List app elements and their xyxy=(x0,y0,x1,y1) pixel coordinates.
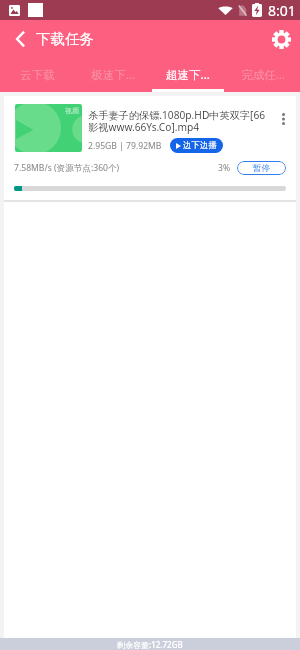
staticText: 边下边播 xyxy=(183,140,217,151)
button[interactable]: Settings xyxy=(263,20,300,58)
button[interactable]: More options xyxy=(272,104,294,134)
staticText: 完成任... xyxy=(241,67,285,83)
button[interactable]: 边下边播 xyxy=(170,138,223,153)
staticText: 2.95GB | 79.92MB xyxy=(88,140,162,152)
button[interactable]: 暂停 xyxy=(237,161,286,175)
staticText: 杀手妻子的保镖.1080p.HD中英双字[66影视www.66Ys.Co].mp… xyxy=(88,108,272,134)
button[interactable]: 极速下... xyxy=(75,58,150,92)
staticText: 8:01 xyxy=(268,1,296,20)
button[interactable]: 云下载 xyxy=(0,58,75,92)
staticText: 云下载 xyxy=(20,68,55,82)
staticText: 超速下... xyxy=(166,67,210,83)
staticText: 视频 xyxy=(65,106,79,115)
staticText: 3% xyxy=(218,162,231,174)
staticText: 7.58MB/s (资源节点:360个) xyxy=(14,162,120,174)
staticText: 暂停 xyxy=(253,163,271,174)
staticText: 极速下... xyxy=(91,67,135,83)
button[interactable]: Back xyxy=(0,20,36,58)
staticText: 剩余容量:12.72GB xyxy=(117,639,183,650)
button[interactable]: 完成任... xyxy=(225,58,300,92)
button[interactable]: 超速下... xyxy=(150,58,225,92)
staticText: 下载任务 xyxy=(36,30,94,48)
